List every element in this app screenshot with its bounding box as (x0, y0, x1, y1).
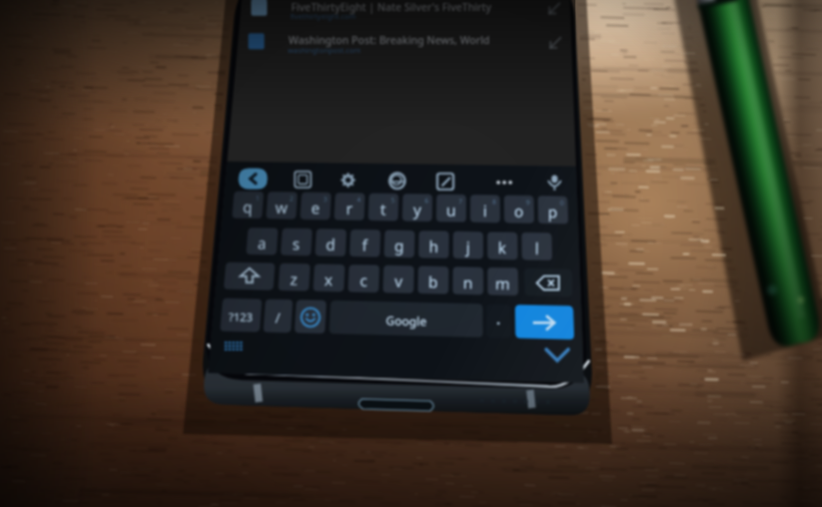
button[interactable]: Phone showing on-screen keyboard on a wo… (0, 0, 822, 507)
